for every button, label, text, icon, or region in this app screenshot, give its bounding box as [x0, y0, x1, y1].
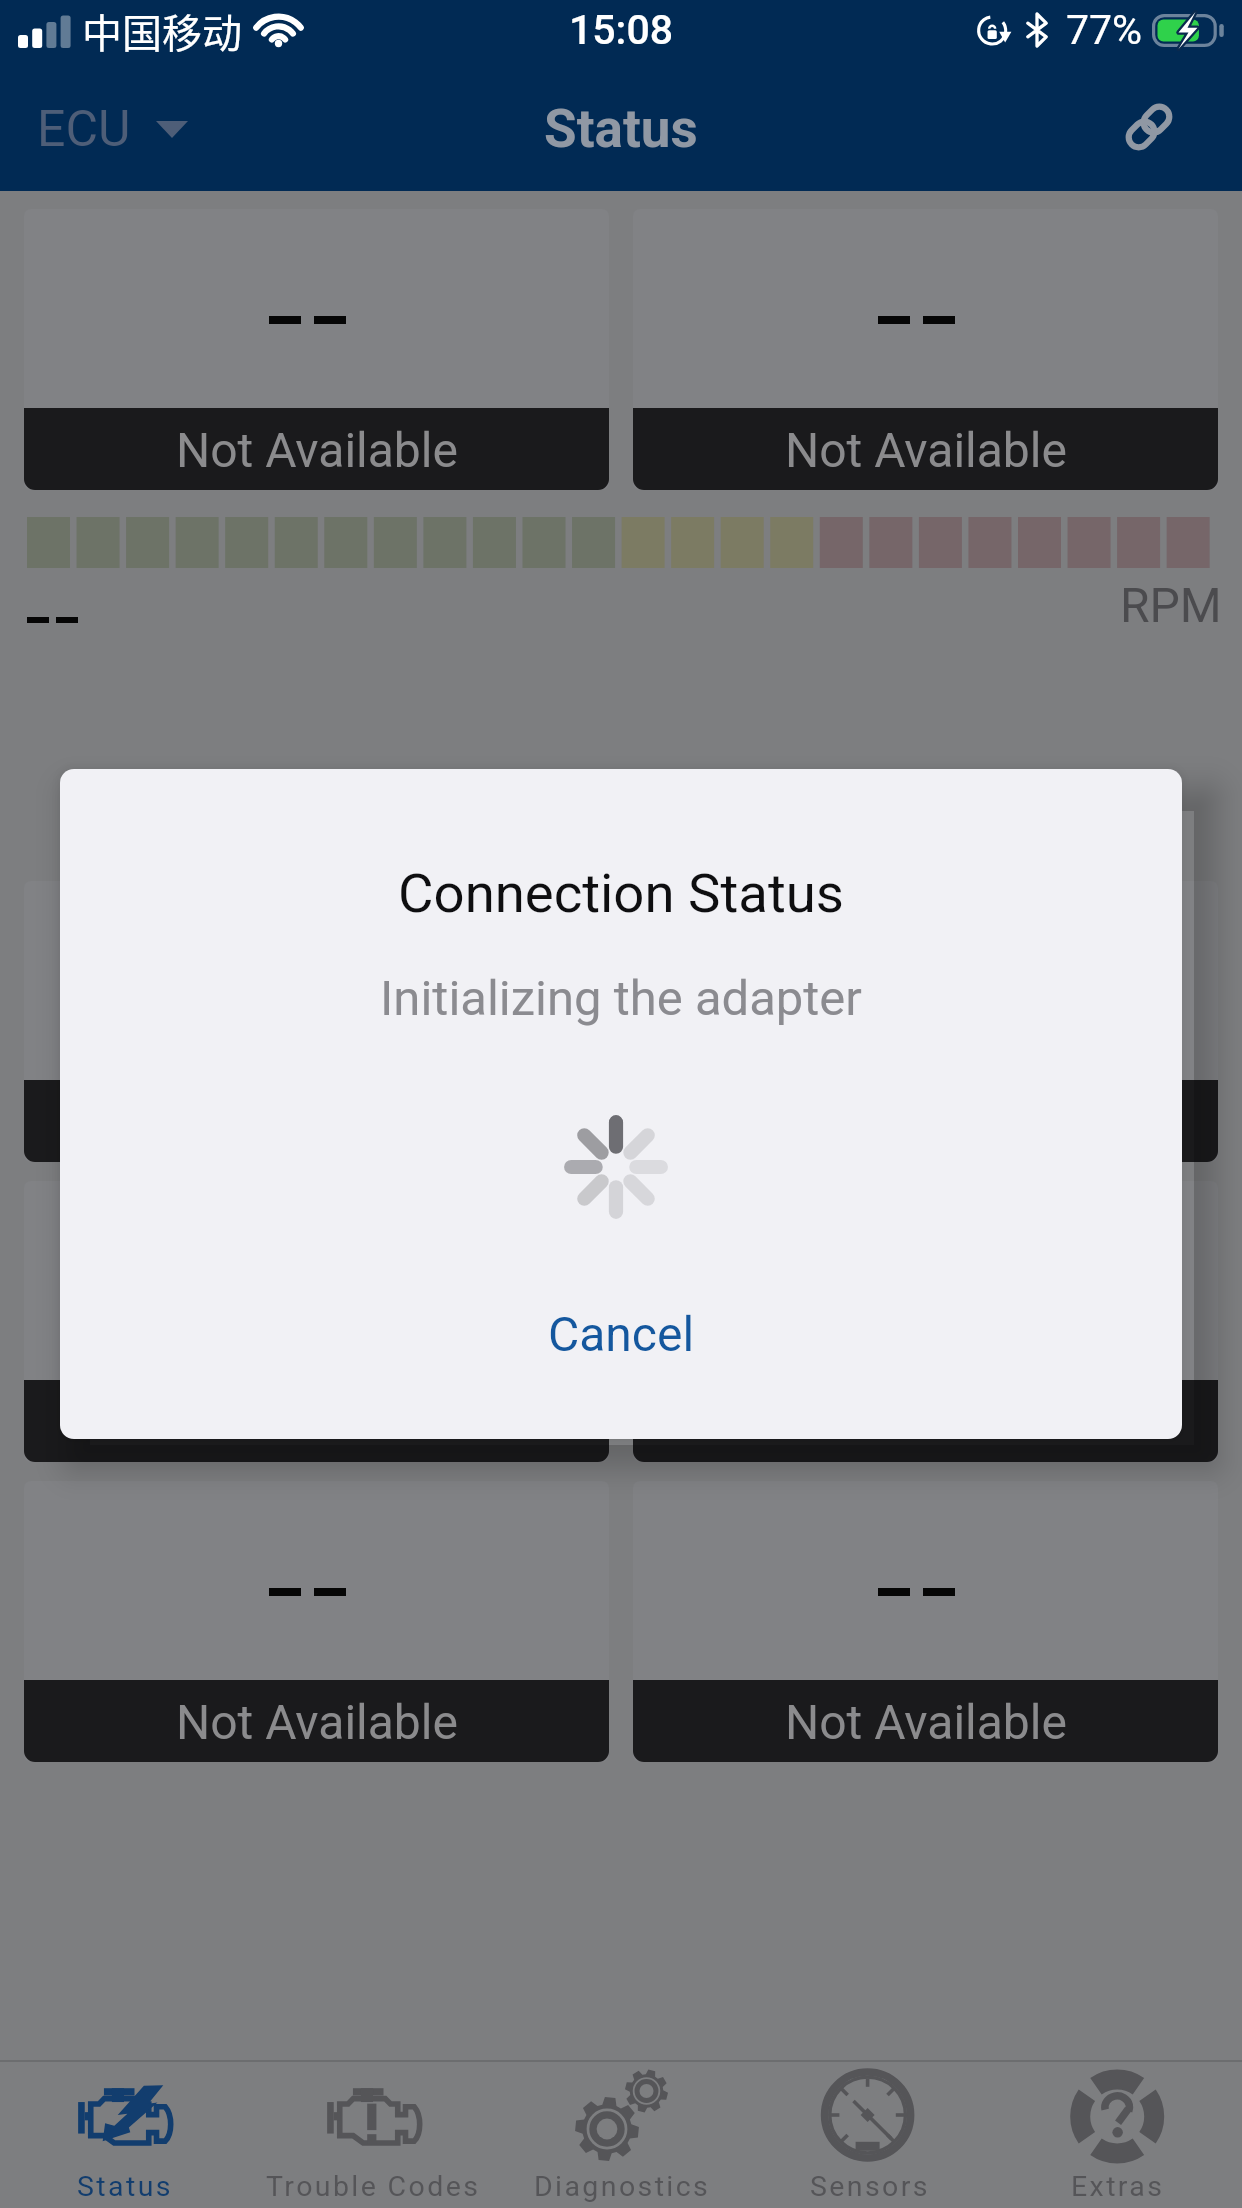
staticText: RPM: [1120, 577, 1222, 633]
button[interactable]: Not Available: [24, 881, 609, 1162]
staticText: 中国移动: [82, 2, 242, 60]
staticText: Not Available: [176, 1394, 458, 1450]
button[interactable]: Not Available: [633, 881, 1218, 1162]
staticText: Cancel: [548, 1306, 695, 1362]
staticText: ECU: [37, 100, 131, 159]
staticText: Not Available: [785, 1694, 1067, 1750]
staticText: Diagnostics: [534, 2170, 711, 2203]
staticText: 77%: [1066, 6, 1143, 54]
button[interactable]: Not Available: [633, 209, 1218, 490]
staticText: Not Available: [785, 1394, 1067, 1450]
staticText: Status: [77, 2170, 173, 2203]
button[interactable]: RPM: [0, 517, 1242, 647]
staticText: Status: [544, 98, 698, 160]
staticText: Not Available: [176, 422, 458, 478]
staticText: Not Available: [176, 1694, 458, 1750]
button[interactable]: Not Available: [24, 1181, 609, 1462]
staticText: Sensors: [810, 2170, 930, 2203]
button[interactable]: Not Available: [24, 1481, 609, 1762]
button[interactable]: Connect adapter: [1114, 92, 1184, 162]
button[interactable]: Not Available: [24, 209, 609, 490]
button[interactable]: Cancel: [60, 1274, 1182, 1394]
staticText: Trouble Codes: [266, 2170, 481, 2203]
button[interactable]: Extras: [994, 2062, 1242, 2158]
button[interactable]: Diagnostics: [498, 2062, 746, 2158]
button[interactable]: Status: [0, 2062, 249, 2158]
button[interactable]: Trouble Codes: [249, 2062, 498, 2158]
button[interactable]: ECU: [37, 100, 188, 159]
staticText: Extras: [1071, 2170, 1165, 2203]
button[interactable]: Not Available: [633, 1481, 1218, 1762]
button[interactable]: Not Available: [633, 1181, 1218, 1462]
button[interactable]: Sensors: [746, 2062, 994, 2158]
staticText: Initializing the adapter: [60, 970, 1182, 1027]
staticText: Not Available: [785, 422, 1067, 478]
staticText: Connection Status: [60, 861, 1182, 925]
staticText: 15:08: [569, 6, 674, 54]
